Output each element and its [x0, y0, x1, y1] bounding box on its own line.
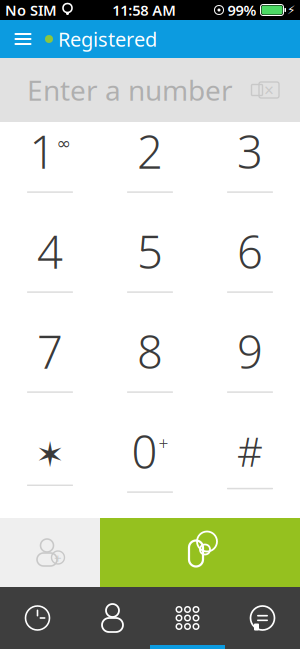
staticText: 5: [137, 221, 163, 281]
staticText: 8: [137, 321, 163, 381]
staticText: 3: [237, 121, 263, 181]
staticText: 11:58 AM: [112, 0, 176, 20]
button[interactable]: 0: [100, 420, 200, 520]
button[interactable]: Keypad: [150, 587, 225, 649]
staticText: ✶: [35, 435, 64, 474]
staticText: 0: [131, 421, 157, 481]
button[interactable]: #: [200, 420, 300, 520]
button[interactable]: Call: [100, 518, 300, 587]
button[interactable]: Add contact: [0, 518, 100, 587]
staticText: 1: [29, 121, 55, 181]
button[interactable]: 4: [0, 220, 100, 320]
button[interactable]: Menu: [6, 20, 40, 58]
button[interactable]: 8: [100, 320, 200, 420]
staticText: 9: [237, 321, 263, 381]
staticText: 7: [37, 321, 63, 381]
staticText: 4: [37, 221, 63, 281]
button[interactable]: 2: [100, 120, 200, 220]
staticText: Enter a number: [27, 71, 233, 109]
staticText: 99%: [227, 0, 256, 20]
button[interactable]: ✶: [0, 420, 100, 520]
staticText: 6: [237, 221, 263, 281]
staticText: ⚡︎: [287, 3, 295, 17]
staticText: Registered: [58, 26, 157, 52]
staticText: ∞: [56, 133, 70, 153]
staticText: ×: [264, 78, 274, 101]
button[interactable]: 9: [200, 320, 300, 420]
button[interactable]: 6: [200, 220, 300, 320]
button[interactable]: 1: [0, 120, 100, 220]
button[interactable]: Contacts: [75, 587, 150, 649]
button[interactable]: 3: [200, 120, 300, 220]
staticText: +: [158, 432, 168, 455]
staticText: #: [237, 425, 263, 478]
button[interactable]: 7: [0, 320, 100, 420]
button[interactable]: 5: [100, 220, 200, 320]
button[interactable]: Recents: [0, 587, 75, 649]
button[interactable]: Delete: [242, 75, 300, 105]
staticText: 2: [137, 121, 163, 181]
staticText: +: [54, 549, 62, 566]
button[interactable]: Messages: [225, 587, 300, 649]
staticText: No SIM: [5, 0, 57, 20]
